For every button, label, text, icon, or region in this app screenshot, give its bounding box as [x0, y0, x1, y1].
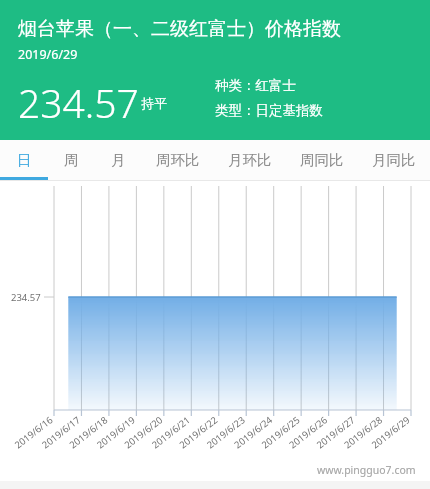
staticText: 烟台苹果（一、二级红富士）价格指数	[18, 17, 341, 41]
button[interactable]: 周	[48, 140, 95, 180]
button[interactable]: 日	[0, 140, 48, 180]
staticText: 2019/6/29	[18, 46, 78, 63]
staticText: 周环比	[156, 151, 200, 169]
staticText: 月环比	[228, 151, 272, 169]
button[interactable]: 周同比	[286, 140, 358, 180]
staticText: 234.57	[18, 76, 139, 129]
button[interactable]: 月环比	[214, 140, 286, 180]
staticText: 月同比	[372, 151, 416, 169]
button[interactable]: 周环比	[142, 140, 214, 180]
staticText: 类型：日定基指数	[215, 102, 323, 119]
button[interactable]: 月	[95, 140, 142, 180]
staticText: 种类：红富士	[215, 77, 296, 94]
staticText: 月	[111, 151, 126, 169]
staticText: 持平	[141, 95, 167, 111]
staticText: 周同比	[300, 151, 344, 169]
staticText: 周	[64, 151, 79, 169]
button[interactable]: 月同比	[358, 140, 430, 180]
staticText: 日	[17, 151, 32, 169]
